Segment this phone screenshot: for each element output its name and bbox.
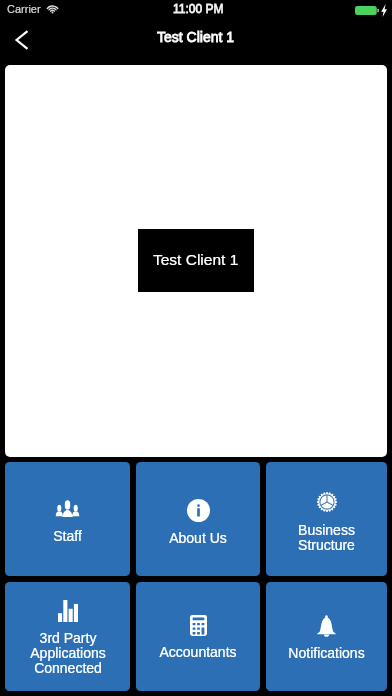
button[interactable]: Accountants [136, 582, 260, 691]
staticText: 3rd Party Applications Connected [30, 630, 106, 676]
staticText: Test Client 1 [153, 251, 239, 268]
staticText: About Us [169, 530, 227, 546]
button[interactable]: Notifications [266, 582, 387, 691]
button[interactable]: Staff [5, 462, 130, 576]
staticText: Business Structure [298, 522, 355, 553]
staticText: Notifications [288, 645, 365, 661]
staticText: 11:00 PM [173, 2, 224, 15]
button[interactable]: About Us [136, 462, 260, 576]
staticText: Staff [53, 528, 82, 544]
staticText: Carrier [7, 3, 41, 15]
staticText: Accountants [159, 644, 237, 660]
button[interactable]: Back [0, 22, 42, 62]
staticText: Test Client 1 [157, 29, 235, 45]
button[interactable]: Business Structure [266, 462, 387, 576]
button[interactable]: 3rd Party Applications Connected [5, 582, 130, 691]
